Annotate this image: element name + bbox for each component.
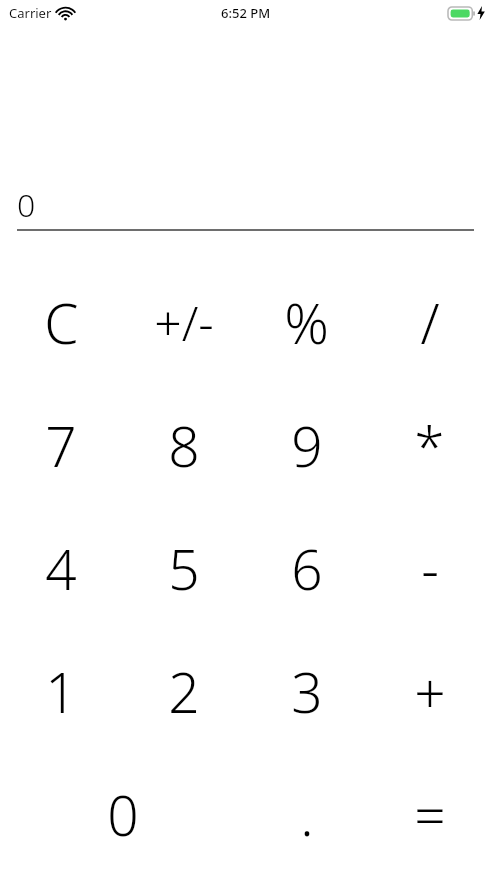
staticText: C bbox=[44, 285, 79, 360]
staticText: / bbox=[420, 285, 440, 360]
staticText: 8 bbox=[168, 408, 200, 483]
button[interactable]: . bbox=[245, 753, 368, 876]
staticText: + bbox=[414, 654, 446, 729]
staticText: +/- bbox=[154, 290, 214, 355]
staticText: 2 bbox=[168, 654, 200, 729]
button[interactable]: 5 bbox=[122, 507, 245, 630]
button[interactable]: / bbox=[368, 261, 491, 384]
button[interactable]: = bbox=[368, 753, 491, 876]
staticText: Carrier bbox=[9, 4, 52, 22]
staticText: . bbox=[300, 777, 314, 852]
staticText: * bbox=[414, 408, 445, 483]
button[interactable]: 3 bbox=[245, 630, 368, 753]
button[interactable]: + bbox=[368, 630, 491, 753]
staticText: 1 bbox=[45, 654, 77, 729]
button[interactable]: +/- bbox=[122, 261, 245, 384]
staticText: 0 bbox=[107, 777, 139, 852]
staticText: 0 bbox=[17, 183, 36, 227]
staticText: 3 bbox=[291, 654, 323, 729]
button[interactable]: 9 bbox=[245, 384, 368, 507]
button[interactable]: C bbox=[0, 261, 122, 384]
button[interactable]: % bbox=[245, 261, 368, 384]
staticText: 4 bbox=[45, 531, 77, 606]
button[interactable]: - bbox=[368, 507, 491, 630]
staticText: = bbox=[414, 777, 446, 852]
button[interactable]: 4 bbox=[0, 507, 122, 630]
button[interactable]: 1 bbox=[0, 630, 122, 753]
staticText: % bbox=[284, 285, 329, 360]
button[interactable]: 8 bbox=[122, 384, 245, 507]
staticText: - bbox=[421, 531, 439, 606]
staticText: 6:52 PM bbox=[221, 4, 271, 22]
staticText: 7 bbox=[45, 408, 77, 483]
button[interactable]: 7 bbox=[0, 384, 122, 507]
button[interactable]: 6 bbox=[245, 507, 368, 630]
staticText: 5 bbox=[168, 531, 200, 606]
button[interactable]: * bbox=[368, 384, 491, 507]
button[interactable]: 0 bbox=[0, 753, 245, 876]
staticText: 6 bbox=[291, 531, 323, 606]
staticText: 9 bbox=[291, 408, 323, 483]
button[interactable]: 2 bbox=[122, 630, 245, 753]
